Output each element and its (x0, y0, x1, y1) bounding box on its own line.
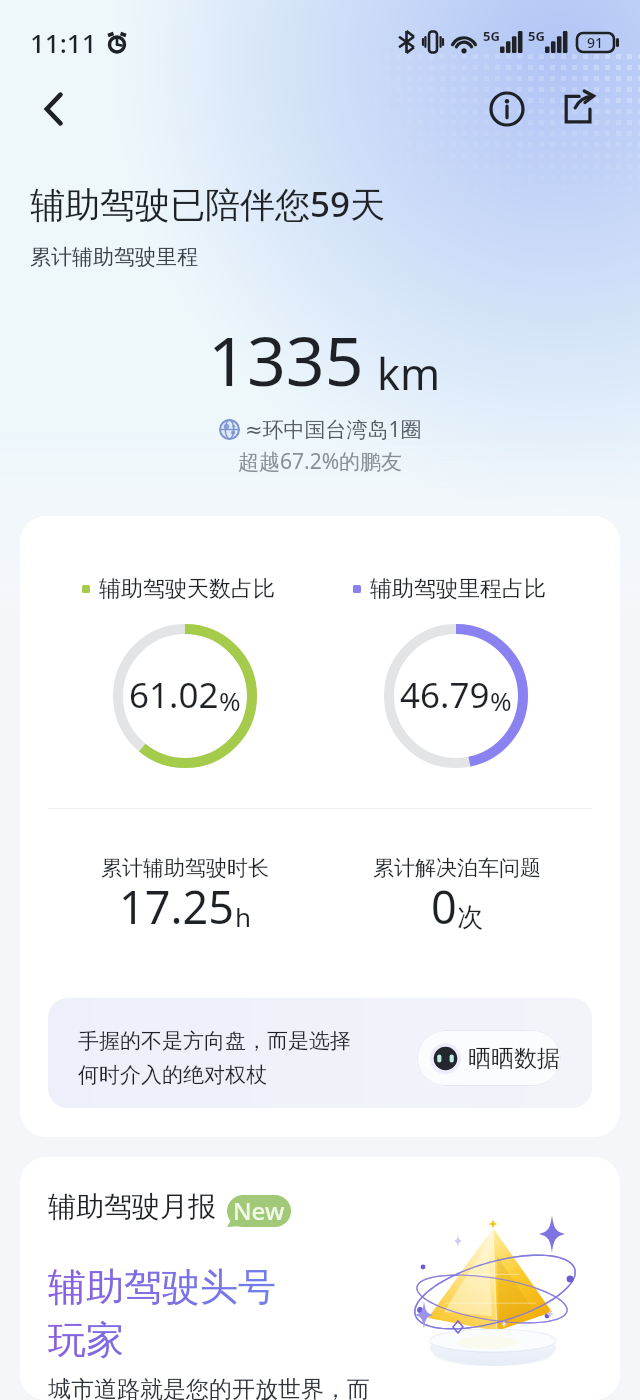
staticText: 5G (483, 27, 500, 45)
staticText: 11:11 (30, 25, 97, 60)
staticText: 玩家 (48, 1316, 124, 1364)
button[interactable]: Share (552, 84, 602, 134)
staticText: 辅助驾驶天数占比 (99, 575, 275, 603)
staticText: 辅助驾驶里程占比 (370, 575, 546, 603)
staticText: 城市道路就是您的开放世界，而 (48, 1375, 370, 1400)
staticText: 17.25 (119, 876, 235, 937)
staticText: 晒晒数据 (468, 1044, 560, 1073)
staticText: 手握的不是方向盘，而是选择 (78, 1028, 351, 1054)
staticText: h (235, 899, 252, 934)
staticText: 1335 (208, 313, 364, 406)
staticText: 何时介入的绝对权杖 (78, 1062, 267, 1088)
button[interactable]: 晒晒数据 (417, 1030, 561, 1086)
staticText: 91 (587, 33, 604, 52)
staticText: 辅助驾驶头号 (48, 1263, 276, 1311)
staticText: km (377, 344, 441, 403)
staticText: 0 (431, 876, 457, 937)
staticText: % (490, 683, 512, 718)
staticText: 辅助驾驶已陪伴您59天 (30, 180, 386, 228)
staticText: 累计辅助驾驶时长 (101, 855, 269, 881)
staticText: 46.79 (400, 671, 490, 719)
staticText: 超越67.2%的鹏友 (238, 447, 403, 476)
staticText: 61.02 (129, 671, 219, 719)
button[interactable]: 辅助驾驶月报 (20, 1157, 620, 1400)
staticText: 累计解决泊车问题 (373, 855, 541, 881)
staticText: % (219, 683, 241, 718)
staticText: 5G (528, 27, 545, 45)
button[interactable]: Back (26, 81, 82, 137)
button[interactable]: Info (482, 84, 532, 134)
staticText: New (233, 1194, 285, 1227)
staticText: 累计辅助驾驶里程 (30, 244, 198, 270)
staticText: 辅助驾驶月报 (48, 1189, 216, 1224)
staticText: 次 (457, 901, 483, 934)
staticText: ≈环中国台湾岛1圈 (245, 415, 422, 444)
